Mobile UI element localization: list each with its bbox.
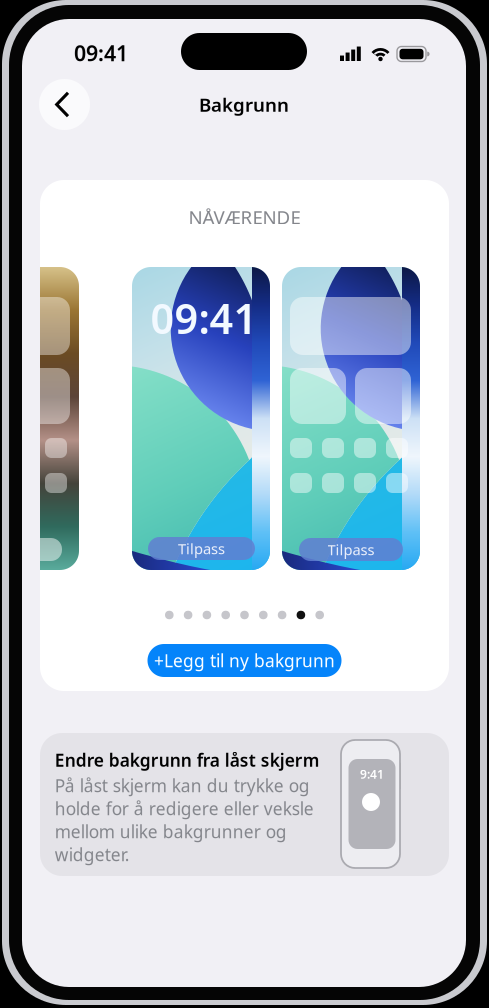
staticText: 9:41 [360,766,384,782]
staticText: 09:41 [74,39,128,67]
staticText: NÅVÆRENDE [188,205,300,229]
staticText: Tilpass [178,539,225,558]
button[interactable]: Tilpass [148,537,255,560]
button[interactable]: Forrige bakgrunn [0,267,79,570]
button[interactable]: Tilpass [299,538,403,561]
staticText: Endre bakgrunn fra låst skjerm [55,748,320,771]
staticText: +Legg til ny bakgrunn [154,649,335,672]
staticText: På låst skjerm kan du trykke og holde fo… [55,774,314,866]
button[interactable]: Bakgrunn for hjemmeskjerm [282,267,420,570]
button[interactable]: Back [39,79,90,130]
staticText: 09:41 [150,291,257,345]
button[interactable]: +Legg til ny bakgrunn [147,644,341,677]
button[interactable]: Bakgrunn for låst skjerm [132,267,270,570]
staticText: Tilpass [327,540,374,559]
staticText: Bakgrunn [199,92,289,117]
